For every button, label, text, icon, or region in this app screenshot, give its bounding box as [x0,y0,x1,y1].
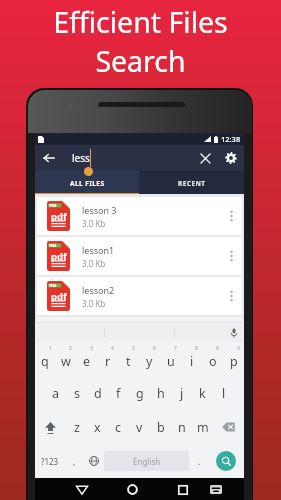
staticText: w [61,353,71,370]
button[interactable]: . [190,444,208,478]
staticText: PRO [49,283,57,288]
staticText: 8 [195,345,198,352]
button[interactable]: PRO [37,237,242,275]
button[interactable]: 0 [223,342,244,376]
staticText: i [190,353,194,370]
button[interactable]: z [66,410,87,444]
staticText: English [133,456,161,467]
staticText: Search [95,42,186,81]
staticText: x [94,419,101,436]
staticText: lesson1 [82,244,115,256]
button[interactable]: j [171,376,192,410]
button[interactable]: Recent apps [171,478,195,500]
staticText: . [198,455,201,467]
staticText: y [146,353,153,370]
button[interactable]: 1 [35,342,55,376]
button[interactable]: 3 [76,342,97,376]
staticText: 3 [90,345,93,352]
button[interactable]: 4 [97,342,118,376]
button[interactable]: v [129,410,150,444]
button[interactable]: Change language [84,444,103,478]
button[interactable]: PRO [37,197,242,235]
staticText: pdf [51,290,67,303]
staticText: v [136,419,143,436]
button[interactable]: l [213,376,234,410]
button[interactable]: ALL FILES [35,171,139,194]
staticText: z [74,419,80,436]
staticText: pdf [51,210,67,223]
staticText: PRO [49,203,57,208]
button[interactable]: Shift [35,410,66,444]
staticText: q [41,353,49,370]
button[interactable]: , [65,444,84,478]
button[interactable]: 5 [118,342,139,376]
staticText: k [199,385,206,402]
staticText: lesson 3 [82,204,117,216]
button[interactable]: 6 [139,342,160,376]
button[interactable]: 9 [202,342,223,376]
button[interactable]: More options [220,277,242,315]
button[interactable]: More options [220,197,242,235]
staticText: e [83,353,91,370]
button[interactable]: RECENT [139,171,244,194]
staticText: 9 [216,345,219,352]
button[interactable]: 7 [160,342,181,376]
staticText: d [94,385,102,402]
button[interactable]: d [87,376,108,410]
button[interactable]: a [45,376,66,410]
staticText: pdf [51,250,67,263]
staticText: a [52,385,60,402]
button[interactable]: Back [70,478,94,500]
button[interactable]: 8 [181,342,202,376]
button[interactable]: h [150,376,171,410]
button[interactable]: c [108,410,129,444]
button[interactable]: ?123 [35,444,65,478]
staticText: r [105,353,111,370]
staticText: 5 [132,345,135,352]
staticText: s [74,385,80,402]
staticText: 1 [49,345,52,352]
button[interactable]: More options [220,237,242,275]
staticText: c [115,419,122,436]
staticText: , [73,455,76,467]
button[interactable]: Change keyboard [204,478,228,500]
button[interactable]: 2 [55,342,76,376]
button[interactable]: x [87,410,108,444]
staticText: 6 [153,345,156,352]
staticText: f [116,385,121,402]
button[interactable]: Settings [218,145,244,171]
button[interactable]: Backspace [213,410,244,444]
staticText: u [167,353,175,370]
button[interactable]: Back [35,145,63,171]
staticText: RECENT [178,179,206,188]
staticText: p [230,353,238,370]
staticText: g [136,385,144,402]
button[interactable]: m [192,410,213,444]
staticText: ALL FILES [70,179,105,188]
staticText: o [209,353,217,370]
button[interactable]: s [66,376,87,410]
staticText: t [126,353,131,370]
staticText: lesson2 [82,284,115,296]
staticText: 4 [111,345,114,352]
button[interactable]: PRO [37,277,242,315]
staticText: ?123 [41,456,59,467]
staticText: 3.0 Kb [82,258,106,269]
staticText: less [72,151,90,165]
button[interactable]: Search [208,444,244,478]
button[interactable]: n [171,410,192,444]
button[interactable]: English [104,451,189,471]
button[interactable]: b [150,410,171,444]
button[interactable]: Clear search [192,145,218,171]
button[interactable]: f [108,376,129,410]
staticText: 7 [174,345,177,352]
button[interactable]: Home [120,478,144,500]
button[interactable]: Voice input [224,323,244,342]
staticText: l [222,385,226,402]
staticText: 0 [237,345,240,352]
staticText: m [197,419,209,436]
staticText: b [157,419,165,436]
staticText: 2 [69,345,72,352]
button[interactable]: g [129,376,150,410]
button[interactable]: k [192,376,213,410]
